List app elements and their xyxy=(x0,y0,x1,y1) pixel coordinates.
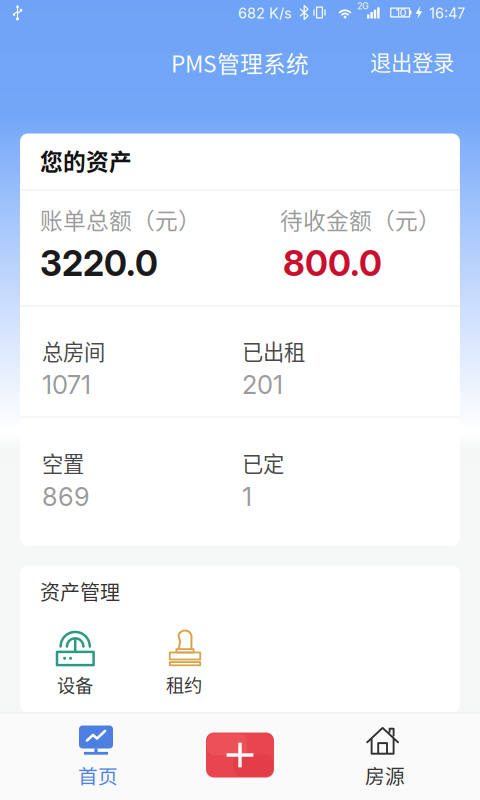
staticText: 1071 xyxy=(42,369,91,400)
button[interactable]: 首页 xyxy=(21,712,171,800)
staticText: 已出租 xyxy=(242,335,305,366)
staticText: 10 xyxy=(395,6,406,19)
staticText: 3220.0 xyxy=(40,242,158,284)
staticText: 租约 xyxy=(166,671,202,698)
staticText: PMS管理系统 xyxy=(171,46,309,79)
staticText: 1 xyxy=(242,481,252,512)
staticText: 已定 xyxy=(242,447,284,478)
staticText: 资产管理 xyxy=(40,577,120,606)
staticText: 待收金额（元） xyxy=(280,203,441,236)
staticText: 首页 xyxy=(78,761,118,789)
button[interactable]: 设备 xyxy=(27,627,123,709)
staticText: 空置 xyxy=(42,447,84,478)
staticText: 16:47 xyxy=(429,4,465,22)
staticText: 您的资产 xyxy=(40,144,132,177)
button[interactable]: 房源 xyxy=(309,712,459,800)
staticText: 2G xyxy=(357,0,369,11)
staticText: 房源 xyxy=(365,761,405,789)
staticText: 869 xyxy=(42,481,90,512)
staticText: 682 K/s xyxy=(238,4,292,22)
staticText: 退出登录 xyxy=(370,46,454,77)
staticText: 账单总额（元） xyxy=(40,203,201,236)
staticText: 设备 xyxy=(57,671,93,698)
staticText: 201 xyxy=(242,369,283,400)
button[interactable]: 租约 xyxy=(137,627,233,709)
staticText: 总房间 xyxy=(42,335,105,366)
button[interactable]: 新增 xyxy=(170,712,310,800)
button[interactable]: 退出登录 xyxy=(360,35,464,87)
staticText: 800.0 xyxy=(283,242,382,284)
